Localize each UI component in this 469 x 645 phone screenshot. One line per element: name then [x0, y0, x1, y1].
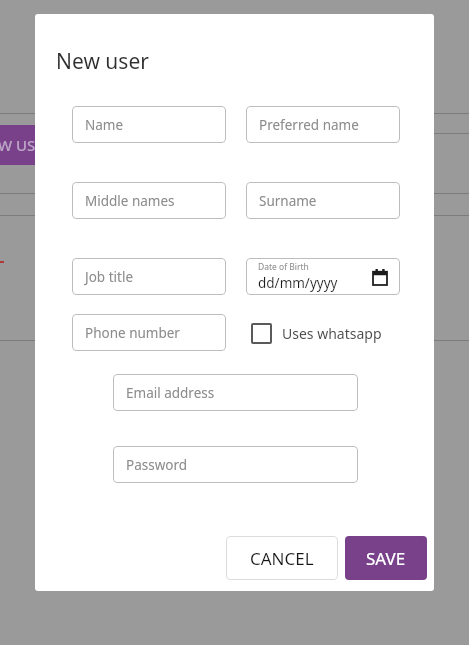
staticText: Email address — [126, 384, 215, 402]
staticText: Phone number — [85, 324, 180, 342]
staticText: New user — [56, 47, 149, 76]
button[interactable]: Name — [72, 106, 226, 143]
button[interactable]: Uses whatsapp — [251, 317, 382, 349]
staticText: W US — [0, 135, 36, 155]
button[interactable]: Middle names — [72, 182, 226, 219]
button[interactable]: CANCEL — [226, 536, 338, 580]
staticText: dd/mm/yyyy — [258, 274, 338, 292]
staticText: CANCEL — [250, 547, 314, 570]
button[interactable]: Phone number — [72, 314, 226, 351]
button[interactable]: SAVE — [345, 536, 427, 580]
button[interactable]: Preferred name — [246, 106, 400, 143]
button[interactable]: Email address — [113, 374, 358, 411]
staticText: Middle names — [85, 192, 175, 210]
staticText: Password — [126, 456, 188, 474]
staticText: Preferred name — [259, 116, 359, 134]
staticText: Date of Birth — [258, 261, 309, 273]
button[interactable]: Job title — [72, 258, 226, 295]
button[interactable]: W US — [0, 125, 36, 165]
button[interactable]: Date of Birth — [246, 258, 400, 295]
other: Pick date — [373, 269, 387, 285]
staticText: SAVE — [366, 547, 406, 570]
button[interactable]: Surname — [246, 182, 400, 219]
staticText: Job title — [85, 268, 133, 286]
button[interactable]: Password — [113, 446, 358, 483]
staticText: Surname — [259, 192, 317, 210]
staticText: Name — [85, 116, 124, 134]
staticText: Uses whatsapp — [282, 324, 382, 343]
